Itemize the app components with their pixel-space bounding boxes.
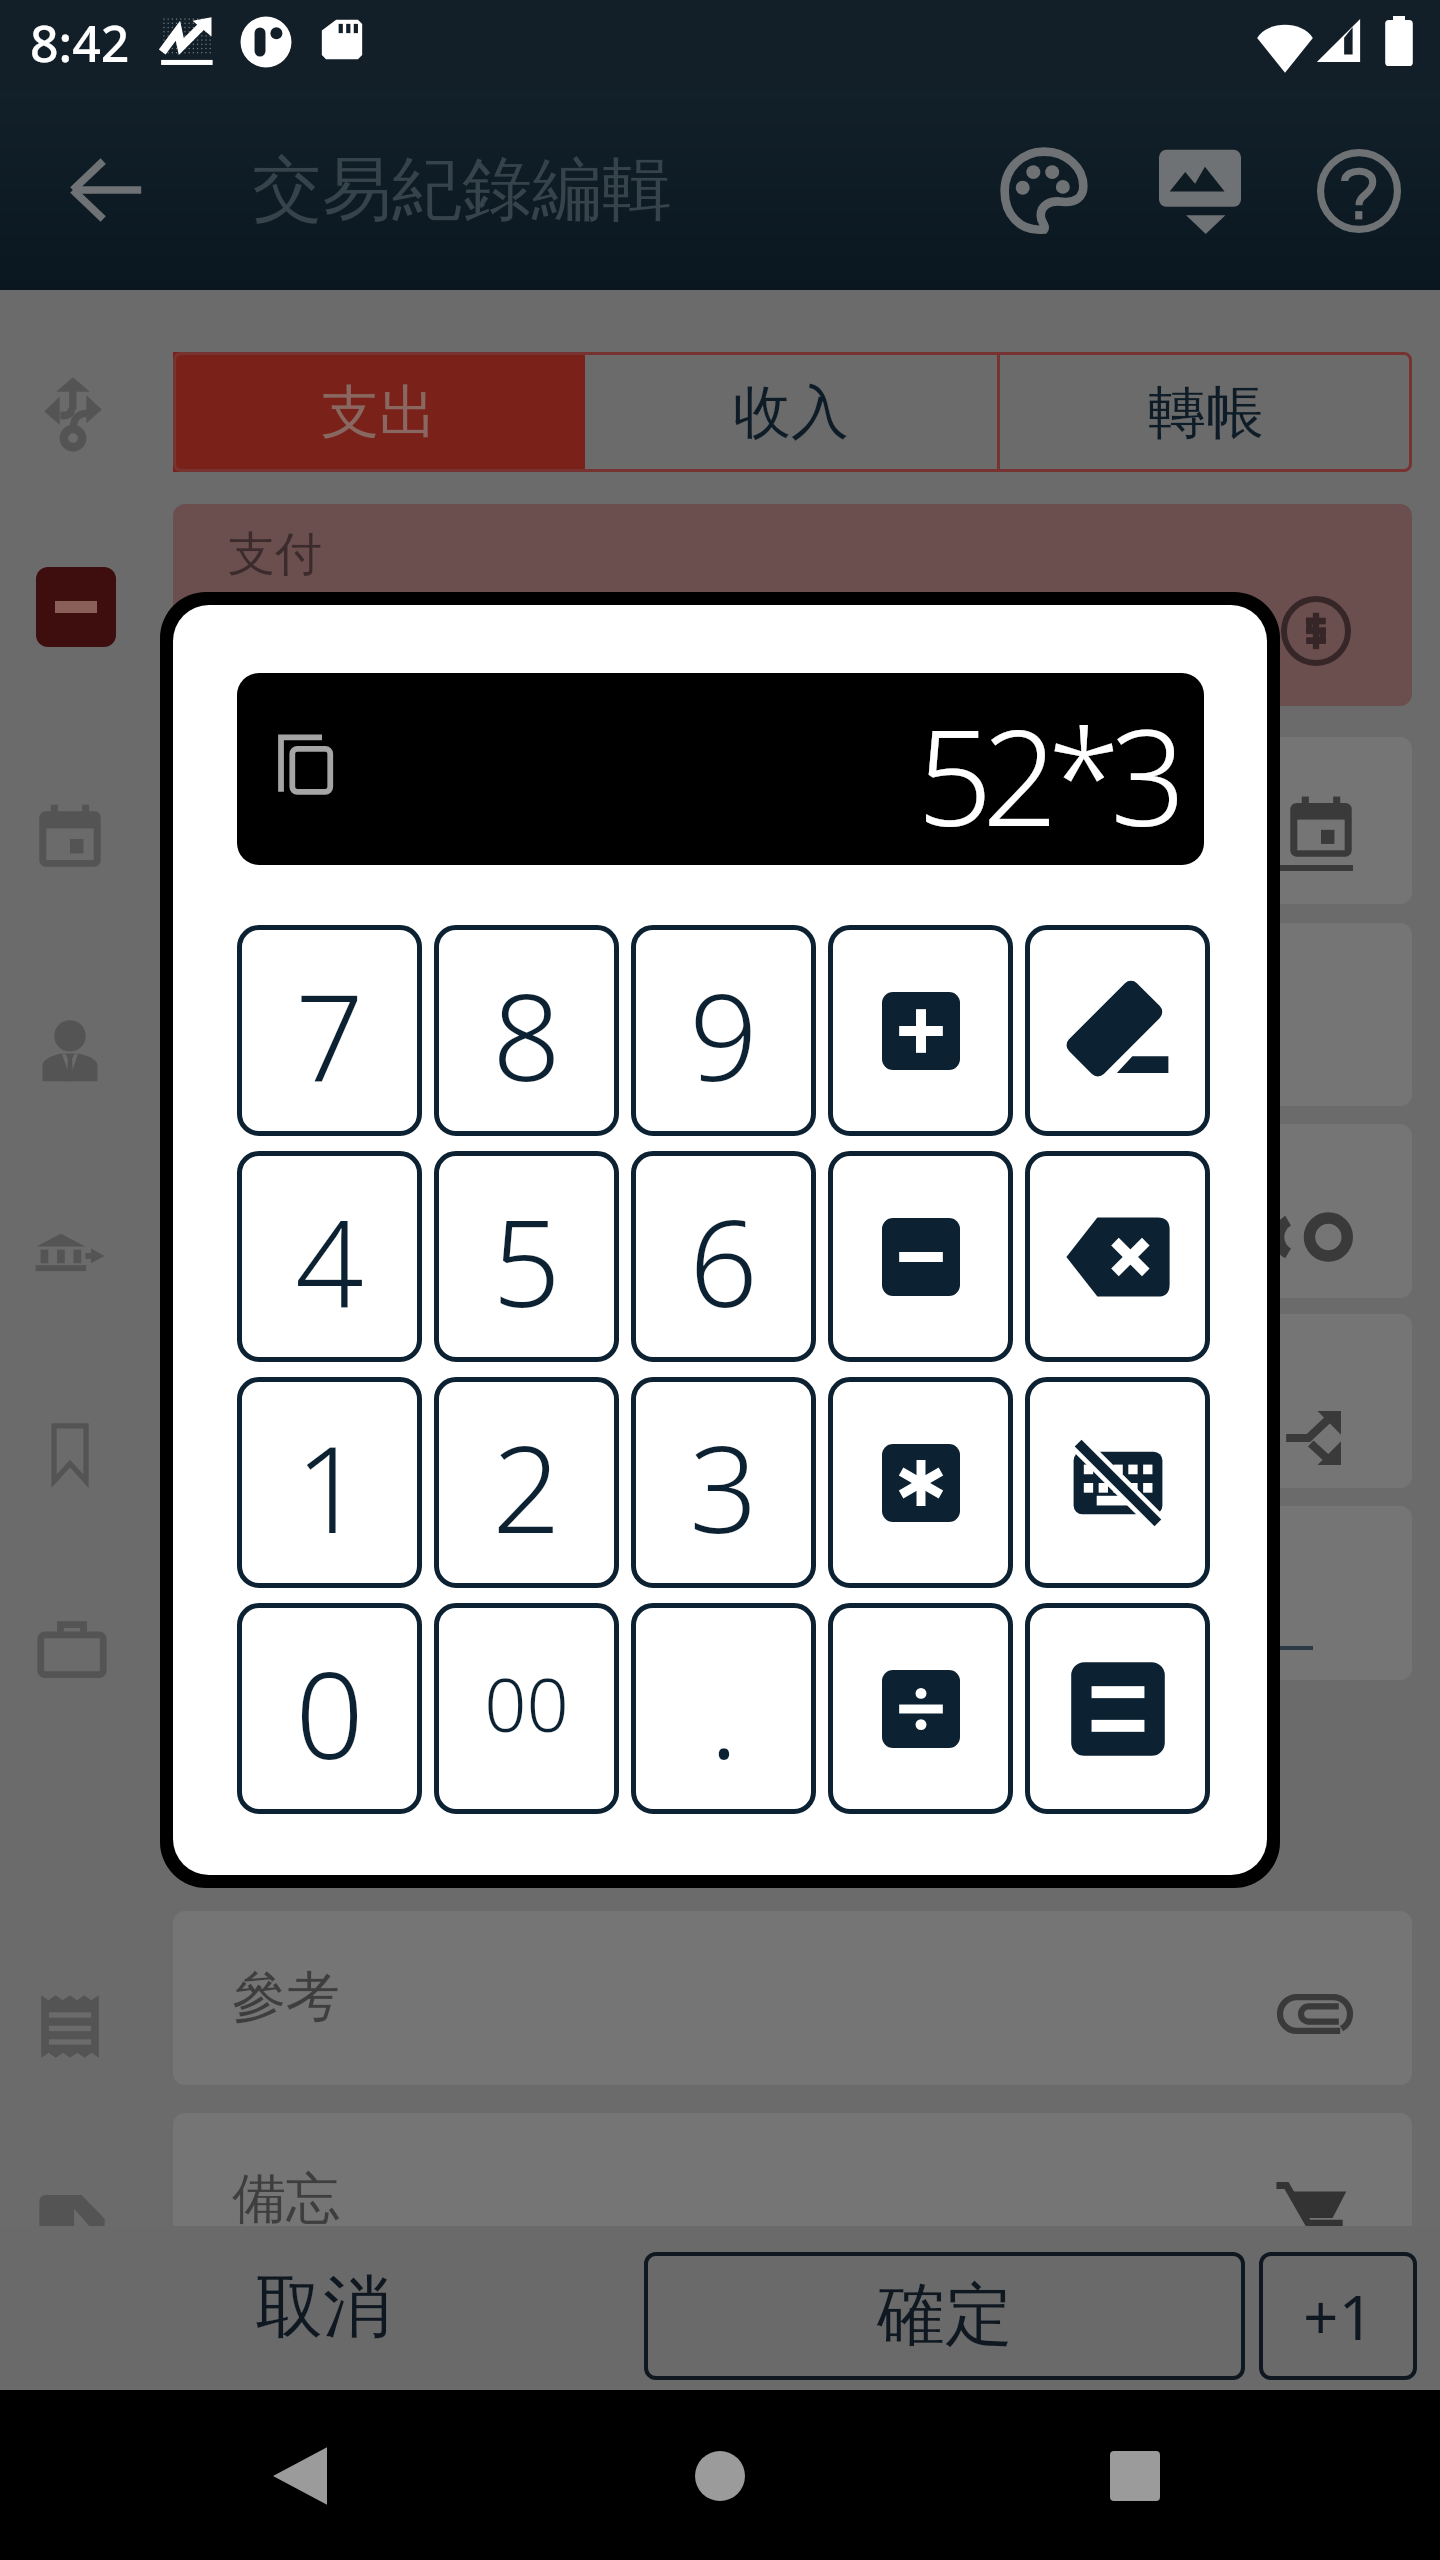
button[interactable]: 收入: [585, 352, 997, 472]
button[interactable]: minus: [828, 1151, 1013, 1362]
button[interactable]: 5: [434, 1151, 619, 1362]
button[interactable]: divide: [828, 1603, 1013, 1814]
button[interactable]: 支出: [173, 352, 585, 472]
button[interactable]: .: [631, 1603, 816, 1814]
staticText: 9: [689, 953, 758, 1116]
staticText: 8: [492, 953, 561, 1116]
staticText: 交易紀錄編輯: [252, 146, 672, 234]
button[interactable]: Image: [1130, 121, 1270, 261]
staticText: 確定: [877, 2273, 1013, 2359]
button[interactable]: 3: [631, 1377, 816, 1588]
button[interactable]: 轉帳: [1000, 352, 1412, 472]
staticText: 52*3: [917, 685, 1176, 865]
staticText: 支付: [228, 525, 322, 584]
button[interactable]: 0: [237, 1603, 422, 1814]
button[interactable]: 9: [631, 925, 816, 1136]
staticText: 3: [689, 1405, 758, 1568]
button[interactable]: 確定: [644, 2252, 1245, 2380]
staticText: 轉帳: [1148, 376, 1264, 449]
button[interactable]: 8: [434, 925, 619, 1136]
button[interactable]: 4: [237, 1151, 422, 1362]
button[interactable]: Copy: [263, 721, 347, 805]
staticText: 備忘: [232, 2165, 340, 2233]
staticText: 1: [295, 1405, 364, 1568]
staticText: 5: [492, 1179, 561, 1342]
button[interactable]: times: [828, 1377, 1013, 1588]
staticText: .: [709, 1631, 739, 1794]
button[interactable]: 00: [434, 1603, 619, 1814]
button[interactable]: 2: [434, 1377, 619, 1588]
button[interactable]: [173, 1124, 1412, 1298]
staticText: 6: [689, 1179, 758, 1342]
button[interactable]: 支付: [173, 504, 1412, 706]
staticText: 支出: [321, 376, 437, 449]
button[interactable]: Back: [240, 2416, 360, 2536]
button[interactable]: [173, 1314, 1412, 1488]
button[interactable]: 1: [237, 1377, 422, 1588]
button[interactable]: plus: [828, 925, 1013, 1136]
button[interactable]: Theme: [974, 121, 1114, 261]
button[interactable]: [173, 737, 1412, 904]
button[interactable]: keyboard: [1025, 1377, 1210, 1588]
staticText: 參考: [232, 1963, 340, 2031]
staticText: 取消: [255, 2265, 391, 2351]
button[interactable]: Help: [1289, 121, 1429, 261]
button[interactable]: Expense: [36, 567, 116, 647]
button[interactable]: 6: [631, 1151, 816, 1362]
staticText: 4: [295, 1179, 364, 1342]
button[interactable]: Back: [38, 121, 176, 259]
staticText: 0: [295, 1631, 364, 1794]
button[interactable]: [173, 1506, 1412, 1680]
button[interactable]: [173, 923, 1412, 1106]
button[interactable]: 參考: [173, 1911, 1412, 2085]
staticText: 7: [295, 953, 364, 1116]
button[interactable]: eraser: [1025, 925, 1210, 1136]
button[interactable]: backspace: [1025, 1151, 1210, 1362]
staticText: 2: [492, 1405, 561, 1568]
button[interactable]: 取消: [250, 2244, 395, 2372]
button[interactable]: 7: [237, 925, 422, 1136]
button[interactable]: +1: [1259, 2252, 1417, 2380]
button[interactable]: Recents: [1075, 2416, 1195, 2536]
staticText: 00: [484, 1653, 569, 1754]
staticText: 收入: [733, 376, 849, 449]
staticText: +1: [1303, 2274, 1374, 2358]
button[interactable]: 備忘: [173, 2113, 1412, 2287]
staticText: 8:42: [30, 9, 130, 77]
button[interactable]: Home: [660, 2416, 780, 2536]
button[interactable]: equals: [1025, 1603, 1210, 1814]
